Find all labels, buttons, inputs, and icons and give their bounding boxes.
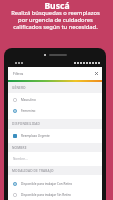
button[interactable]: Femenino: [8, 105, 102, 116]
staticText: DISPONIBILIDAD: [12, 122, 41, 126]
staticText: Filtros: [13, 71, 24, 76]
staticText: Realizá búsquedas o reemplazos por urgen…: [9, 9, 102, 31]
staticText: Masculino: [21, 98, 36, 102]
staticText: GÉNERO: [12, 86, 26, 90]
staticText: Reemplazo Urgente: [21, 134, 50, 138]
button[interactable]: Disponible para trabajar Con Retiro: [8, 178, 102, 190]
button[interactable]: Cerrar filtros: [93, 70, 100, 77]
button[interactable]: Disponible para trabajar Sin Retiro: [8, 190, 102, 200]
staticText: MODALIDAD DE TRABAJO: [12, 169, 54, 173]
staticText: NOMBRE: [12, 146, 27, 150]
staticText: Femenino: [21, 109, 36, 113]
button[interactable]: Reemplazo Urgente: [8, 130, 102, 141]
staticText: Disponible para trabajar Sin Retiro: [21, 193, 71, 197]
staticText: Disponible para trabajar Con Retiro: [21, 182, 73, 186]
button[interactable]: Masculino: [8, 94, 102, 105]
staticText: Nombre...: [13, 157, 28, 161]
staticText: Buscá: [44, 0, 70, 12]
